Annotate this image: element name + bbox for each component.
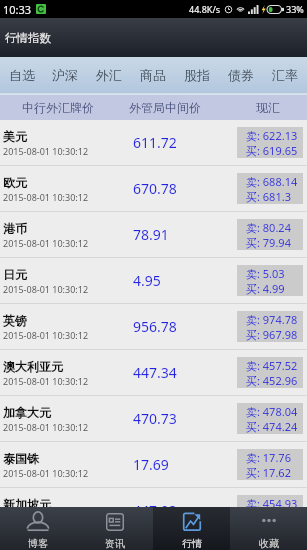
staticText: 商品 (140, 67, 166, 83)
staticText: 日元 (3, 267, 27, 282)
staticText: 2015-08-01 10:30:12 (3, 329, 89, 341)
staticText: 卖: 80.24 (246, 220, 291, 235)
staticText: 4.95 (133, 271, 161, 290)
button[interactable]: 商品 (131, 57, 175, 93)
staticText: 卖: 5.03 (246, 266, 285, 281)
staticText: 行情指数 (5, 31, 51, 45)
button[interactable]: 沪深 (43, 57, 87, 93)
button[interactable]: 港币 (0, 212, 307, 258)
button[interactable]: 加拿大元 (0, 396, 307, 442)
staticText: 买: 619.65 (246, 143, 298, 158)
staticText: 卖: 478.04 (246, 404, 298, 419)
staticText: 外汇 (96, 67, 122, 83)
staticText: 港币 (3, 221, 27, 236)
staticText: 78.91 (133, 225, 169, 244)
staticText: 447.03 (133, 501, 177, 520)
staticText: 卖: 17.76 (246, 450, 291, 465)
staticText: 447.34 (133, 363, 177, 382)
staticText: 加拿大元 (3, 405, 51, 420)
staticText: 2015-08-01 10:30:12 (3, 513, 89, 525)
staticText: 卖: 974.78 (246, 312, 298, 327)
staticText: 买: 17.62 (246, 465, 291, 480)
staticText: 2015-08-01 10:30:12 (3, 145, 89, 157)
staticText: 中行外汇牌价 (22, 100, 94, 115)
button[interactable]: 欧元 (0, 166, 307, 212)
staticText: 欧元 (3, 175, 27, 190)
staticText: 泰国铢 (3, 451, 39, 466)
staticText: 行情 (182, 537, 202, 550)
staticText: 买: 4.99 (246, 281, 285, 296)
button[interactable]: 股指 (175, 57, 219, 93)
staticText: 债券 (228, 67, 254, 83)
staticText: 10:33 (3, 2, 32, 17)
other: 资讯 (103, 511, 127, 535)
staticText: 股指 (184, 67, 210, 83)
staticText: 2015-08-01 10:30:12 (3, 375, 89, 387)
staticText: 现汇 (256, 100, 280, 115)
staticText: 美元 (3, 129, 27, 144)
staticText: 买: 451.76 (246, 511, 298, 526)
button[interactable]: 外汇 (87, 57, 131, 93)
staticText: 买: 967.98 (246, 327, 298, 342)
staticText: 17.69 (133, 455, 169, 474)
button[interactable]: 泰国铢 (0, 442, 307, 488)
staticText: 卖: 457.52 (246, 358, 298, 373)
staticText: 自选 (9, 67, 35, 83)
staticText: 2015-08-01 10:30:12 (3, 237, 89, 249)
staticText: 买: 452.96 (246, 373, 298, 388)
button[interactable]: 新加坡元 (0, 488, 307, 534)
staticText: 670.78 (133, 179, 177, 198)
button[interactable]: 资讯 (76, 507, 153, 550)
staticText: 买: 681.3 (246, 189, 291, 204)
staticText: 博客 (28, 537, 48, 550)
button[interactable]: 美元 (0, 120, 307, 166)
other: 收藏 (257, 511, 281, 535)
staticText: 澳大利亚元 (3, 359, 63, 374)
staticText: 2015-08-01 10:30:12 (3, 467, 89, 479)
staticText: 英镑 (3, 313, 27, 328)
other: 博客 (26, 511, 50, 535)
staticText: 资讯 (105, 537, 125, 550)
staticText: 611.72 (133, 133, 177, 152)
staticText: 卖: 688.14 (246, 174, 298, 189)
staticText: 买: 474.24 (246, 419, 298, 434)
staticText: 2015-08-01 10:30:12 (3, 191, 89, 203)
staticText: 汇率 (272, 67, 298, 83)
button[interactable]: 行情 (153, 507, 230, 550)
button[interactable]: 汇率 (263, 57, 307, 93)
staticText: 470.73 (133, 409, 177, 428)
other: 行情 (180, 511, 204, 535)
staticText: 外管局中间价 (129, 100, 201, 115)
button[interactable]: 债券 (219, 57, 263, 93)
staticText: 956.78 (133, 317, 177, 336)
button[interactable]: 澳大利亚元 (0, 350, 307, 396)
button[interactable]: 自选 (0, 57, 43, 93)
staticText: 卖: 622.13 (246, 128, 298, 143)
button[interactable]: 博客 (0, 507, 76, 550)
staticText: 2015-08-01 10:30:12 (3, 421, 89, 433)
staticText: 44.8K/s (189, 3, 221, 15)
staticText: 沪深 (52, 67, 78, 83)
button[interactable]: 英镑 (0, 304, 307, 350)
button[interactable]: 收藏 (230, 507, 307, 550)
staticText: 新加坡元 (3, 497, 51, 512)
button[interactable]: 日元 (0, 258, 307, 304)
staticText: 收藏 (259, 537, 279, 550)
staticText: 卖: 454.93 (246, 496, 298, 511)
staticText: 2015-08-01 10:30:12 (3, 283, 89, 295)
staticText: 买: 79.94 (246, 235, 291, 250)
staticText: 33% (286, 3, 304, 15)
